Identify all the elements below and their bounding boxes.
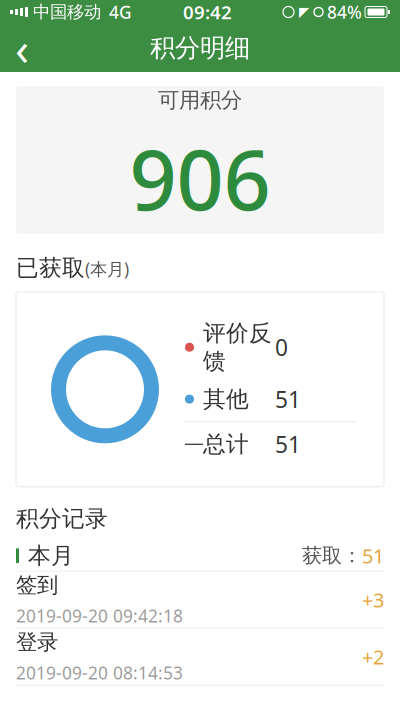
button[interactable]: 签到 (0, 572, 400, 629)
staticText: 其他 (203, 385, 249, 413)
staticText: 可用积分 (158, 87, 242, 113)
staticText: +3 (362, 586, 384, 613)
staticText: 906 (129, 123, 270, 233)
staticText: 51 (275, 429, 301, 459)
staticText: 已获取 (16, 254, 85, 282)
staticText: 登录 (16, 629, 58, 655)
staticText: 09:42 (183, 0, 232, 24)
button[interactable]: 返回 (0, 26, 44, 70)
staticText: 84% (327, 0, 362, 23)
staticText: 2019-09-20 09:42:18 (16, 604, 183, 627)
staticText: 51 (275, 384, 301, 414)
staticText: 总计 (203, 430, 249, 458)
staticText: 签到 (16, 572, 58, 598)
staticText: +2 (362, 643, 384, 670)
staticText: 评价反馈 (203, 319, 272, 375)
staticText: 积分记录 (16, 505, 108, 533)
staticText: 积分明细 (150, 32, 250, 63)
staticText: (本月) (85, 257, 129, 280)
staticText: 0 (275, 332, 288, 362)
staticText: ‹ (15, 18, 29, 78)
staticText: ◤ (299, 4, 309, 19)
staticText: 获取： (302, 543, 362, 568)
staticText: 4G (109, 0, 132, 23)
staticText: 中国移动 (33, 1, 101, 23)
staticText: 本月 (28, 542, 74, 570)
staticText: 2019-09-20 08:14:53 (16, 661, 183, 684)
button[interactable]: 登录 (0, 629, 400, 686)
staticText: 51 (362, 542, 384, 569)
